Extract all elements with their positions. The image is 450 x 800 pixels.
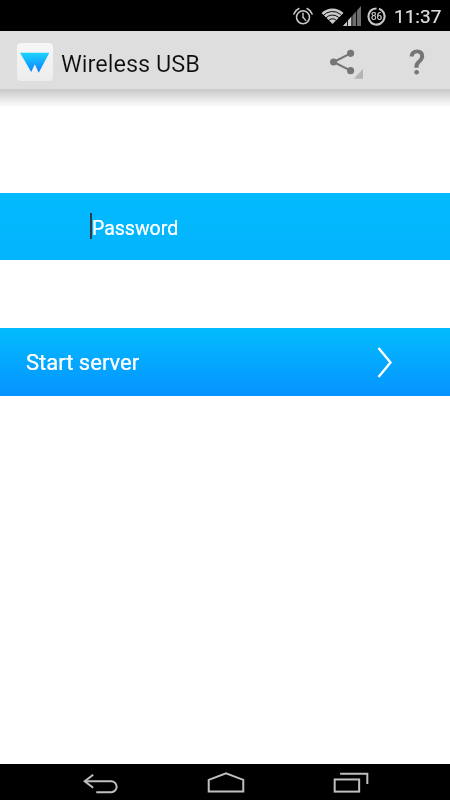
staticText: ?	[409, 42, 426, 82]
button[interactable]: Home	[163, 764, 288, 800]
staticText: 86	[371, 11, 383, 23]
staticText: Password	[92, 217, 179, 240]
staticText: Start server	[26, 350, 140, 376]
staticText: Wireless USB	[61, 50, 200, 78]
button[interactable]: Back	[38, 764, 163, 800]
button[interactable]: Password	[0, 193, 450, 260]
button[interactable]: Start server	[0, 328, 450, 396]
button[interactable]: Share	[328, 31, 389, 90]
button[interactable]: Recents	[288, 764, 413, 800]
staticText: 11:37	[394, 5, 442, 27]
button[interactable]: Help	[389, 31, 450, 90]
